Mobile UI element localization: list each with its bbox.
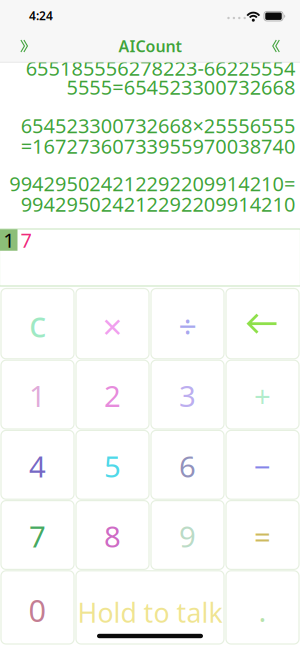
staticText: 6	[179, 447, 196, 486]
staticText: ×	[102, 303, 122, 349]
staticText: +	[254, 376, 271, 415]
staticText: AICount	[118, 35, 181, 57]
staticText: 1	[3, 227, 14, 253]
staticText: =	[254, 517, 271, 556]
staticText: 0	[28, 590, 46, 630]
staticText: 3	[179, 376, 196, 415]
staticText: 7	[20, 227, 31, 253]
staticText: 7	[29, 517, 46, 556]
button[interactable]: 2	[76, 360, 149, 429]
staticText: 655185556278223-66225554	[26, 54, 295, 82]
staticText: −	[254, 447, 271, 486]
button[interactable]: 0	[1, 571, 74, 644]
staticText: 1	[29, 376, 46, 415]
button[interactable]: 3	[151, 360, 224, 429]
staticText: 5	[104, 447, 121, 486]
button[interactable]: 6	[151, 430, 224, 499]
staticText: 994295024212292209914210	[21, 190, 295, 218]
button[interactable]: Backspace	[226, 288, 299, 359]
button[interactable]: 8	[76, 501, 149, 569]
staticText: 654523300732668×25556555	[21, 112, 295, 139]
button[interactable]: −	[226, 430, 299, 499]
button[interactable]: =	[226, 501, 299, 569]
button[interactable]: c	[1, 288, 74, 359]
button[interactable]: ×	[76, 288, 149, 359]
staticText: Hold to talk	[77, 595, 222, 630]
staticText: 4:24	[29, 7, 53, 23]
button[interactable]: 9	[151, 501, 224, 569]
button[interactable]: Hold to talk	[76, 571, 224, 644]
staticText: ÷	[178, 305, 196, 347]
button[interactable]: .	[226, 571, 299, 644]
button[interactable]: +	[226, 360, 299, 429]
button[interactable]: ÷	[151, 288, 224, 359]
staticText: 9	[179, 517, 196, 556]
button[interactable]: 7	[1, 501, 74, 569]
staticText: 4	[29, 447, 46, 486]
staticText: 994295024212292209914210=	[9, 170, 295, 197]
button[interactable]: 5	[76, 430, 149, 499]
staticText: =16727360733955970038740	[21, 132, 295, 160]
button[interactable]: History	[4, 28, 44, 63]
staticText: 2	[104, 376, 121, 415]
staticText: c	[29, 300, 46, 347]
staticText: 8	[104, 517, 121, 556]
staticText: 5555=654523300732668	[66, 73, 295, 101]
button[interactable]: 4	[1, 430, 74, 499]
button[interactable]: Settings	[255, 28, 295, 63]
button[interactable]: 1	[1, 360, 74, 429]
staticText: .	[258, 591, 266, 630]
